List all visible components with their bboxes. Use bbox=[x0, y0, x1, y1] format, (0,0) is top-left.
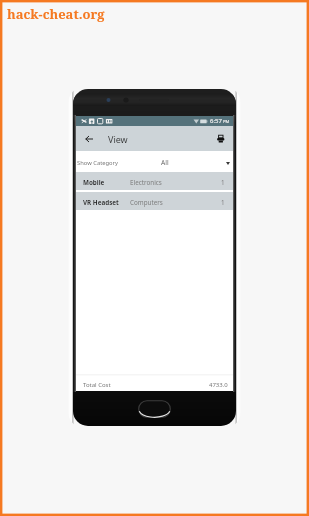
staticText: Mobile bbox=[83, 178, 105, 187]
staticText: 1 bbox=[221, 178, 225, 187]
staticText: Computers bbox=[130, 198, 163, 207]
button[interactable]: Print bbox=[212, 130, 229, 147]
button[interactable]: VR Headset bbox=[76, 192, 233, 210]
staticText: 4733.0 bbox=[209, 381, 228, 389]
staticText: Electronics bbox=[130, 178, 162, 187]
staticText: View bbox=[108, 133, 128, 145]
button[interactable]: Home bbox=[138, 400, 171, 418]
staticText: All bbox=[161, 158, 169, 167]
staticText: hack-cheat.org bbox=[7, 5, 105, 23]
button[interactable]: Back bbox=[81, 131, 97, 147]
button[interactable]: Show Category bbox=[76, 151, 233, 172]
staticText: PM bbox=[223, 119, 230, 125]
staticText: 6:57 bbox=[210, 117, 222, 125]
staticText: Show Category bbox=[77, 159, 118, 167]
staticText: Total Cost bbox=[83, 381, 111, 389]
staticText: 1 bbox=[221, 198, 225, 207]
staticText: VR Headset bbox=[83, 198, 119, 207]
button[interactable]: Mobile bbox=[76, 172, 233, 190]
